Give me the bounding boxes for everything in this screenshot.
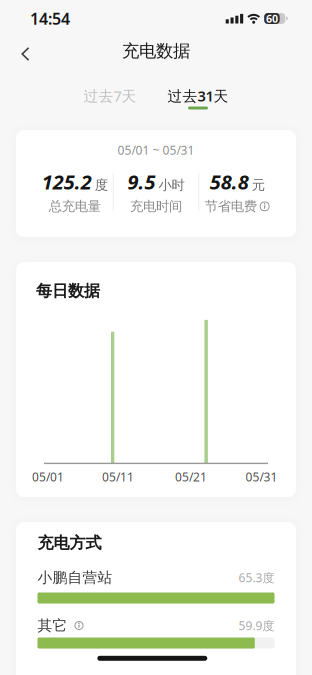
- staticText: 05/21: [175, 469, 207, 485]
- staticText: 充电数据: [122, 40, 190, 62]
- staticText: 节省电费: [205, 198, 257, 215]
- staticText: 125.2: [42, 168, 92, 195]
- staticText: 59.9度: [238, 617, 274, 633]
- staticText: 65.3度: [238, 569, 274, 585]
- staticText: 05/01: [32, 469, 64, 485]
- staticText: 充电时间: [130, 198, 182, 215]
- button[interactable]: 过去7天: [83, 88, 136, 103]
- staticText: 小时: [158, 177, 184, 193]
- button[interactable]: 过去31天: [167, 88, 228, 109]
- staticText: 元: [252, 177, 265, 193]
- staticText: 14:54: [30, 8, 70, 29]
- staticText: 05/01 ~ 05/31: [117, 142, 194, 158]
- staticText: 总充电量: [49, 198, 101, 215]
- staticText: 过去31天: [167, 86, 228, 105]
- staticText: 05/31: [245, 469, 277, 485]
- staticText: 过去7天: [83, 86, 136, 105]
- staticText: 每日数据: [36, 281, 100, 301]
- staticText: 05/11: [102, 469, 134, 485]
- staticText: 60: [266, 11, 278, 26]
- button[interactable]: About other charging stations: [74, 621, 83, 630]
- staticText: 其它: [37, 616, 67, 634]
- button[interactable]: About saved electricity cost: [260, 201, 270, 211]
- staticText: 充电方式: [37, 533, 101, 553]
- staticText: 58.8: [210, 168, 249, 195]
- staticText: 小鹏自营站: [37, 568, 112, 586]
- staticText: 9.5: [127, 168, 155, 195]
- staticText: 度: [95, 177, 108, 193]
- button[interactable]: Back: [0, 37, 30, 65]
